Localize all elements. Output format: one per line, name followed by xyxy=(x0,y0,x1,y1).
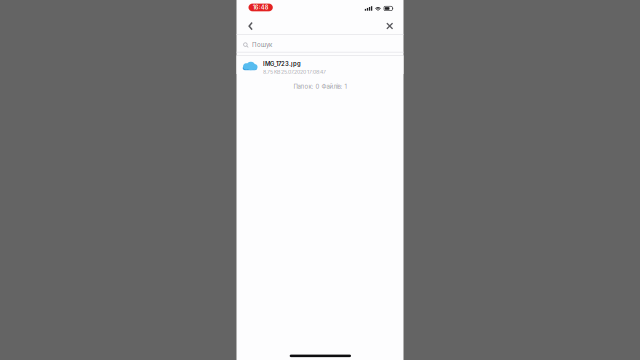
staticText: IMG_1723.jpg xyxy=(263,60,301,67)
button[interactable]: Back xyxy=(242,19,260,34)
staticText: Папок: 0 Файлів: 1 xyxy=(293,83,346,90)
staticText: 16:48 xyxy=(253,4,269,11)
button[interactable]: Close xyxy=(381,18,399,33)
staticText: 8.75 KB 25.07.2020 17:08:47 xyxy=(263,69,326,75)
staticText: Пошук xyxy=(252,41,272,48)
button[interactable]: Пошук xyxy=(243,42,397,48)
button[interactable]: IMG_1723.jpg xyxy=(236,56,403,74)
